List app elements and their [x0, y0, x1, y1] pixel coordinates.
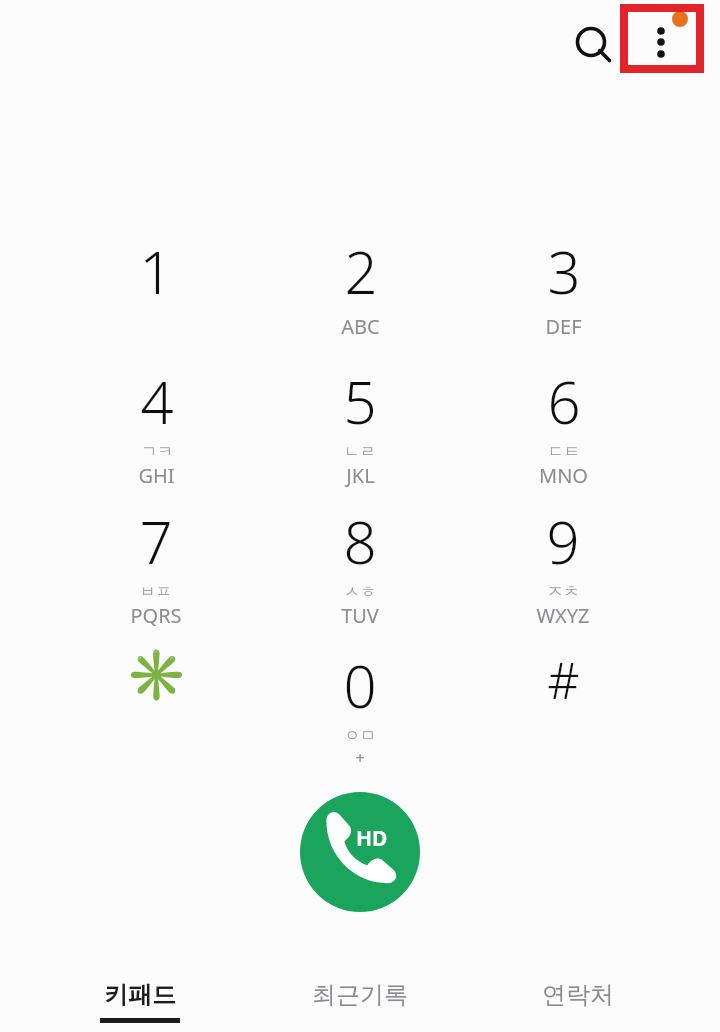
staticText: 4 — [140, 362, 174, 441]
button[interactable]: 1 — [66, 232, 246, 362]
staticText: ㅇㅁ — [344, 726, 376, 746]
staticText: WXYZ — [536, 602, 590, 629]
staticText: ㄱㅋ — [141, 442, 173, 462]
staticText: + — [355, 746, 365, 769]
staticText: ㅈㅊ — [547, 582, 579, 602]
staticText: 2 — [344, 232, 378, 311]
button[interactable]: 3 — [473, 232, 653, 362]
button[interactable]: 4 — [66, 362, 246, 492]
staticText: JKL — [346, 462, 375, 489]
button[interactable]: 9 — [473, 502, 653, 632]
staticText: 0 — [343, 646, 377, 725]
button[interactable]: 2 — [270, 232, 450, 362]
staticText: 3 — [547, 232, 581, 311]
staticText: ㅂㅍ — [140, 582, 172, 602]
button[interactable]: 키패드 — [40, 968, 240, 1032]
staticText: # — [547, 646, 580, 714]
button[interactable]: 연락처 — [478, 968, 678, 1032]
staticText: 8 — [343, 502, 377, 581]
staticText: 최근기록 — [312, 980, 408, 1010]
button[interactable]: ✳ — [66, 646, 246, 776]
staticText: ㅅㅎ — [344, 582, 376, 602]
button[interactable]: 7 — [66, 502, 246, 632]
staticText: 연락처 — [542, 980, 614, 1010]
staticText: HD — [356, 824, 388, 853]
button[interactable]: 5 — [270, 362, 450, 492]
staticText: 6 — [547, 362, 581, 441]
staticText: 5 — [343, 362, 377, 441]
button[interactable]: 8 — [270, 502, 450, 632]
button[interactable]: More options — [636, 10, 688, 62]
staticText: 9 — [546, 502, 580, 581]
staticText: GHI — [138, 462, 175, 489]
staticText: ㄴㄹ — [344, 442, 376, 462]
button[interactable]: Search — [565, 16, 617, 68]
button[interactable]: 최근기록 — [260, 968, 460, 1032]
staticText: ✳ — [125, 646, 188, 705]
staticText: 키패드 — [104, 980, 176, 1010]
staticText: 7 — [139, 502, 173, 581]
staticText: DEF — [545, 313, 582, 340]
staticText: ㄷㅌ — [548, 442, 580, 462]
button[interactable]: 0 — [270, 646, 450, 776]
staticText: MNO — [539, 462, 588, 489]
staticText: 1 — [139, 232, 173, 311]
button[interactable]: Call — [300, 792, 420, 912]
staticText: TUV — [341, 602, 379, 629]
staticText: ABC — [341, 313, 380, 340]
staticText: PQRS — [130, 602, 182, 629]
button[interactable]: # — [473, 646, 653, 776]
button[interactable]: 6 — [473, 362, 653, 492]
